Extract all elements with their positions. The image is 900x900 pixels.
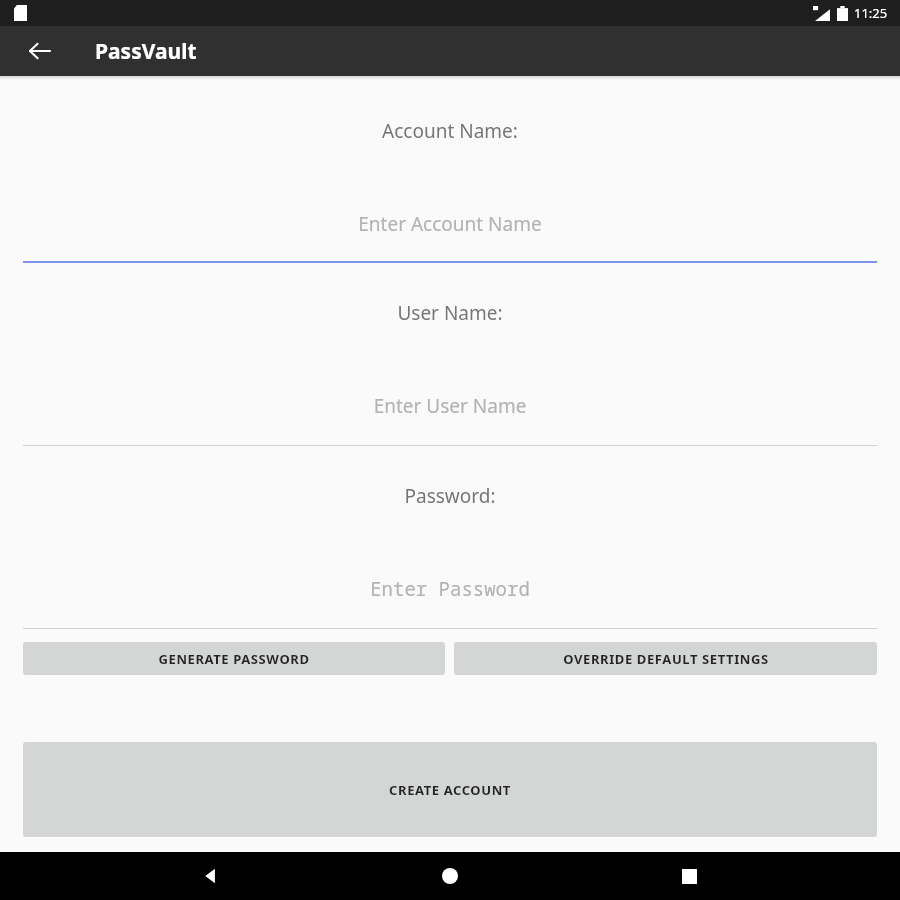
button[interactable]: Back <box>18 29 62 73</box>
staticText: Account Name: <box>0 118 900 144</box>
button[interactable]: Enter User Name <box>23 393 877 419</box>
staticText: GENERATE PASSWORD <box>158 650 310 668</box>
button[interactable]: Enter Account Name <box>23 211 877 237</box>
staticText: PassVault <box>95 37 197 66</box>
button[interactable]: Recent apps <box>661 852 717 900</box>
button[interactable]: Home <box>422 852 478 900</box>
button[interactable]: OVERRIDE DEFAULT SETTINGS <box>454 642 877 675</box>
staticText: Enter Account Name <box>23 211 877 237</box>
staticText: User Name: <box>0 300 900 326</box>
button[interactable]: Enter Password <box>23 576 877 602</box>
staticText: CREATE ACCOUNT <box>389 781 511 799</box>
staticText: Password: <box>0 483 900 509</box>
staticText: OVERRIDE DEFAULT SETTINGS <box>563 650 769 668</box>
button[interactable]: GENERATE PASSWORD <box>23 642 445 675</box>
staticText: Enter Password <box>23 576 877 602</box>
staticText: 11:25 <box>854 4 888 22</box>
button[interactable]: CREATE ACCOUNT <box>23 742 877 837</box>
staticText: Enter User Name <box>23 393 877 419</box>
button[interactable]: Back <box>183 852 239 900</box>
